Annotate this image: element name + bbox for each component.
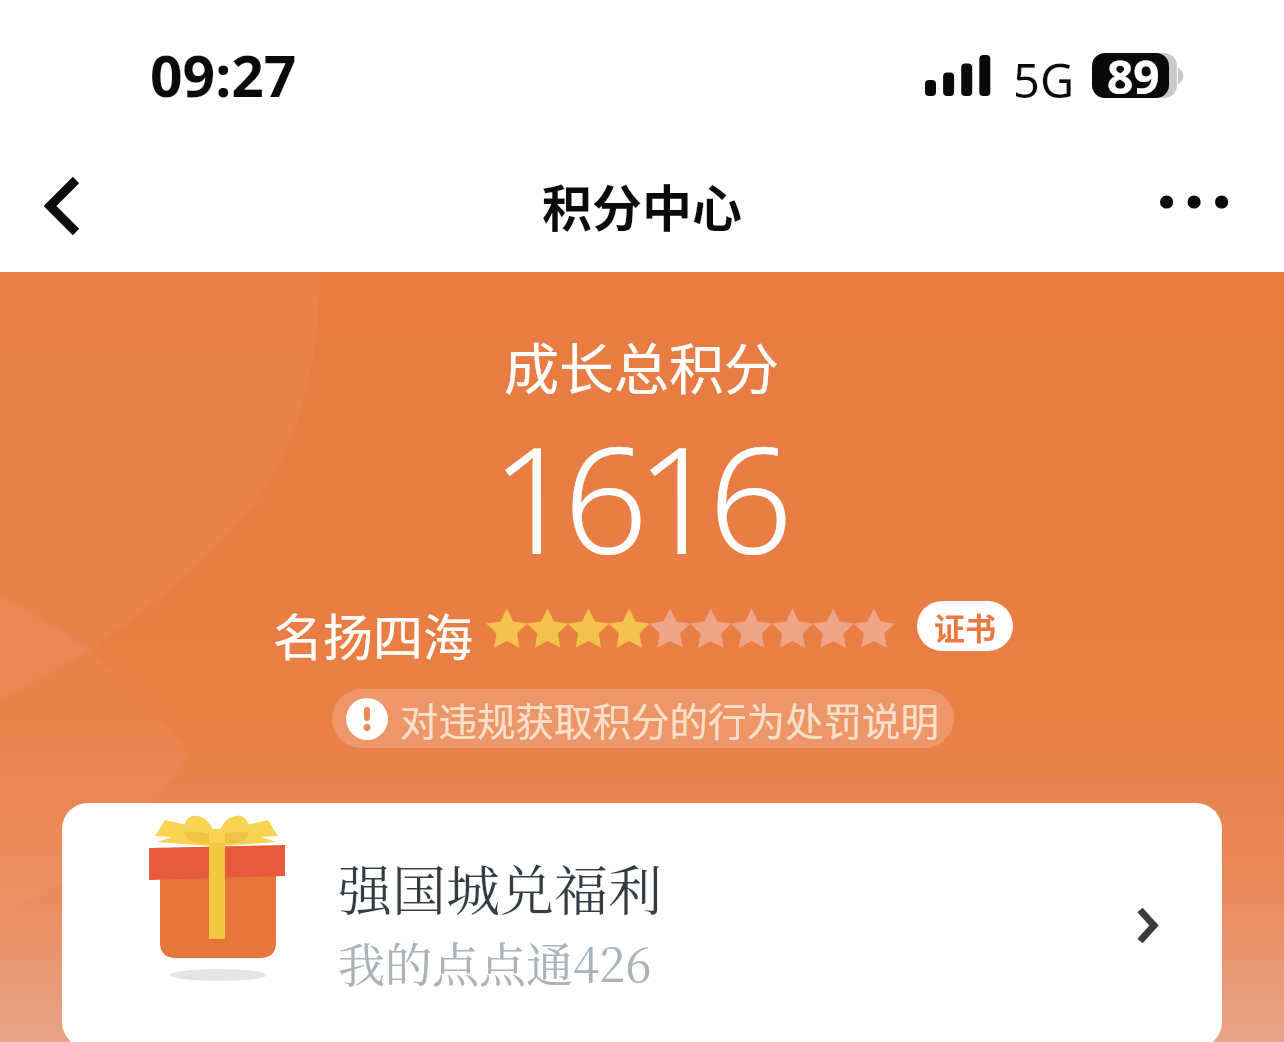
staticText: 成长总积分: [504, 325, 780, 405]
staticText: 对违规获取积分的行为处罚说明: [400, 691, 940, 747]
button[interactable]: 对违规获取积分的行为处罚说明: [332, 689, 954, 748]
staticText: 1616: [491, 396, 782, 598]
staticText: 证书: [934, 604, 996, 649]
button[interactable]: More options: [1145, 162, 1245, 242]
staticText: 名扬四海: [273, 598, 473, 670]
staticText: 5G: [1013, 48, 1075, 112]
button[interactable]: Back: [18, 161, 108, 251]
staticText: 89: [1107, 45, 1160, 108]
button[interactable]: 证书: [917, 601, 1013, 651]
button[interactable]: 强国城兑福利: [62, 803, 1222, 1042]
staticText: 09:27: [150, 36, 297, 114]
staticText: 积分中心: [542, 169, 742, 241]
staticText: 强国城兑福利: [338, 849, 662, 927]
staticText: 我的点点通426: [338, 928, 652, 996]
button[interactable]: Open: [1104, 882, 1190, 968]
